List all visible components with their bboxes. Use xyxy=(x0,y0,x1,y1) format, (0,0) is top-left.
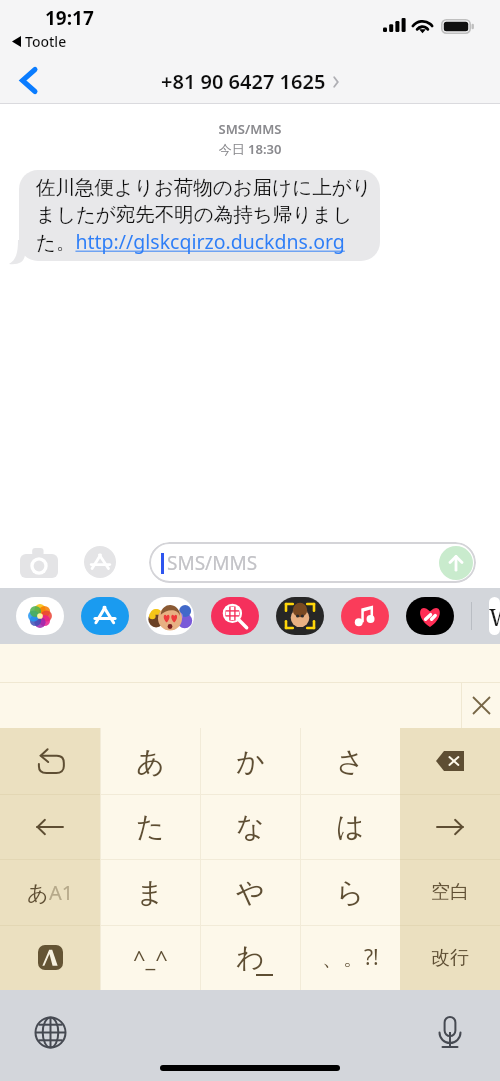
staticText: は xyxy=(336,809,365,844)
staticText: 19:17 xyxy=(45,5,94,31)
staticText: Tootle xyxy=(25,32,67,51)
staticText: A1 xyxy=(49,879,74,906)
button[interactable]: App Store xyxy=(84,546,116,578)
staticText: W xyxy=(489,601,500,632)
staticText: SMS/MMS xyxy=(0,120,500,138)
button[interactable]: key xyxy=(400,859,500,925)
staticText: な xyxy=(236,809,265,844)
button[interactable]: key xyxy=(200,925,300,990)
button[interactable]: key xyxy=(100,925,200,990)
button[interactable]: App xyxy=(406,597,454,635)
staticText: ら xyxy=(336,875,365,910)
staticText: 今日 18:30 xyxy=(0,140,500,158)
staticText: 空白 xyxy=(431,880,469,904)
button[interactable]: key xyxy=(0,859,100,925)
staticText: ま xyxy=(136,875,165,910)
button[interactable]: key xyxy=(100,728,200,794)
button[interactable]: App xyxy=(81,597,129,635)
button[interactable]: App xyxy=(341,597,389,635)
button[interactable]: key xyxy=(200,794,300,859)
button[interactable]: key xyxy=(0,728,100,794)
button[interactable]: key xyxy=(300,728,400,794)
button[interactable]: key xyxy=(200,859,300,925)
button[interactable]: key xyxy=(300,925,400,990)
button[interactable]: App xyxy=(276,597,324,635)
button[interactable]: App xyxy=(16,597,64,635)
button[interactable]: key xyxy=(300,859,400,925)
button[interactable]: key xyxy=(100,794,200,859)
staticText: あ xyxy=(27,880,49,906)
staticText: 改行 xyxy=(431,946,469,970)
button[interactable]: key xyxy=(200,728,300,794)
staticText: SMS/MMS xyxy=(167,550,258,576)
staticText: さ xyxy=(336,744,365,779)
button[interactable]: key xyxy=(400,794,500,859)
button[interactable]: App xyxy=(146,597,194,635)
button[interactable]: Change language xyxy=(31,1013,69,1051)
staticText: た xyxy=(136,809,165,844)
button[interactable]: key xyxy=(0,925,100,990)
button[interactable]: Dictation xyxy=(431,1014,469,1052)
staticText: 、。?! xyxy=(322,943,379,972)
button[interactable]: SMS/MMS xyxy=(149,542,476,583)
button[interactable]: key xyxy=(100,859,200,925)
button[interactable]: Back xyxy=(6,58,50,102)
button[interactable]: App xyxy=(211,597,259,635)
staticText: わ xyxy=(236,940,265,975)
staticText: や xyxy=(236,875,265,910)
button[interactable]: Close keyboard xyxy=(462,682,500,728)
button[interactable]: Send xyxy=(439,546,473,580)
staticText: か xyxy=(236,744,265,779)
button[interactable]: key xyxy=(400,728,500,794)
staticText: 佐川急便よりお荷物のお届けに上がりましたが宛先不明の為持ち帰りました。http:… xyxy=(36,175,374,255)
button[interactable]: key xyxy=(400,925,500,990)
button[interactable]: key xyxy=(300,794,400,859)
button[interactable]: key xyxy=(0,794,100,859)
staticText: +81 90 6427 1625 xyxy=(161,68,326,95)
button[interactable]: Camera xyxy=(18,547,60,579)
staticText: ^_^ xyxy=(133,943,168,973)
button[interactable]: App xyxy=(489,597,500,635)
staticText: あ xyxy=(136,744,165,779)
